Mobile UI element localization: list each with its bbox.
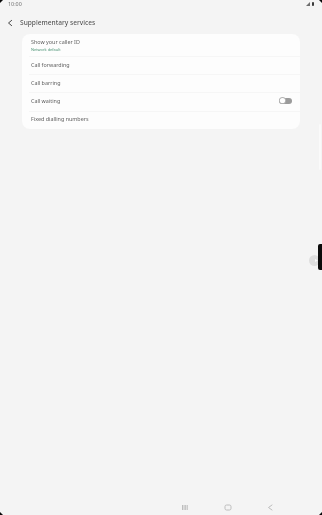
staticText: Call waiting [31,97,61,104]
button[interactable]: Recents [166,493,204,515]
button[interactable]: Show your caller ID [22,34,300,57]
button[interactable]: Home [209,493,247,515]
button[interactable]: Edge panel [318,244,322,270]
button[interactable]: Call forwarding [22,57,300,75]
staticText: Fixed dialling numbers [31,115,89,122]
button[interactable]: Fixed dialling numbers [22,112,300,129]
staticText: Show your caller ID [31,38,80,45]
button[interactable]: Back [251,493,289,515]
staticText: 10:00 [8,0,22,7]
button[interactable]: Call waiting [22,93,300,112]
staticText: Call barring [31,79,61,86]
button[interactable]: Call barring [22,75,300,93]
staticText: Supplementary services [20,18,96,27]
staticText: Call forwarding [31,61,70,68]
staticText: Network default [31,47,61,52]
button[interactable]: Back [1,14,19,32]
